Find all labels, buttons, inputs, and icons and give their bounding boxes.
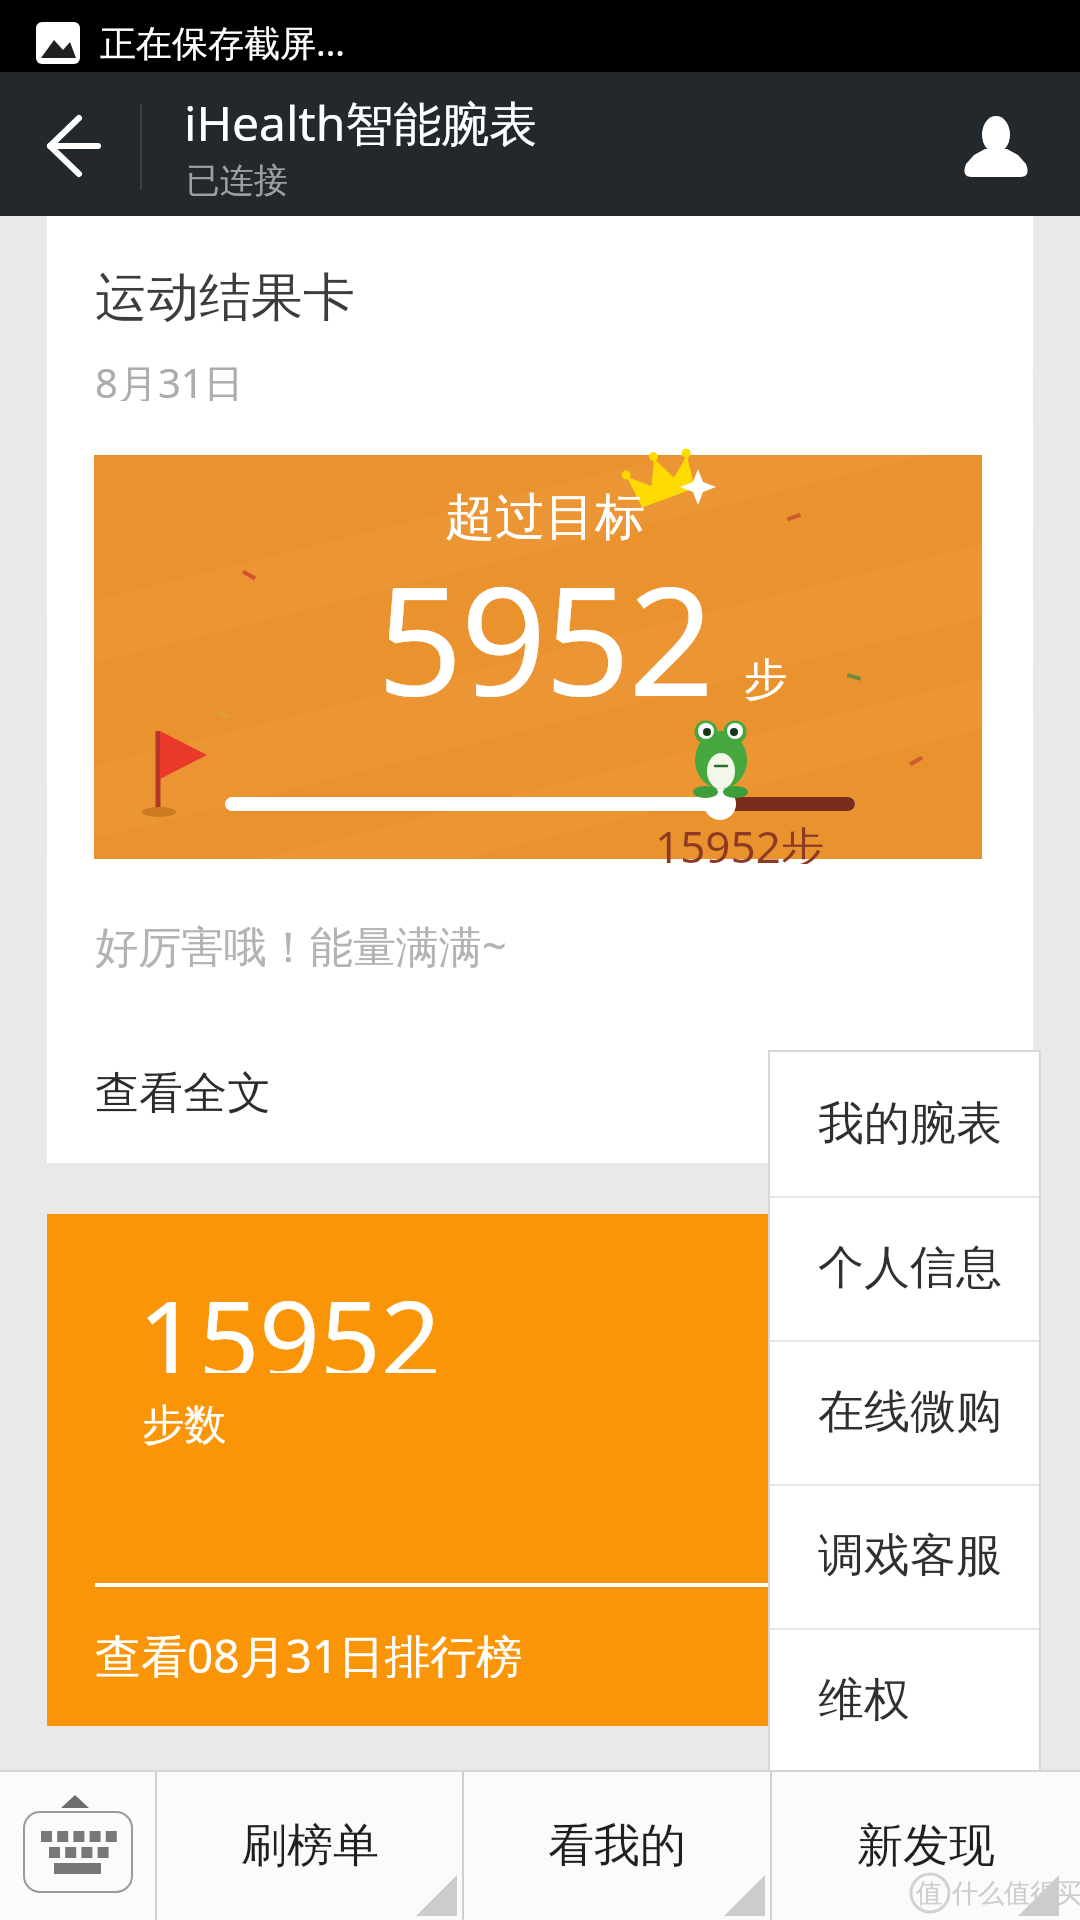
staticText: 步 [744,652,788,706]
button[interactable]: 维权 [770,1628,1039,1772]
staticText: 什么值得买 [952,1877,1080,1910]
button[interactable]: 调戏客服 [770,1484,1039,1628]
button[interactable]: 我的腕表 [770,1052,1039,1196]
staticText: 步数 [142,1399,226,1449]
button[interactable]: 新发现 [772,1772,1080,1920]
staticText: 值 [916,1877,942,1910]
staticText: 看我的 [548,1817,686,1875]
staticText: 新发现 [857,1817,995,1875]
staticText: 我的腕表 [818,1095,1002,1153]
staticText: 查看08月31日排行榜 [95,1624,523,1678]
staticText: 15952步 [655,816,825,864]
staticText: 调戏客服 [818,1527,1002,1585]
button[interactable]: 个人信息 [770,1196,1039,1340]
staticText: 运动结果卡 [95,265,355,325]
staticText: iHealth智能腕表 [184,90,538,148]
staticText: 已连接 [186,159,288,202]
button[interactable] [94,455,982,859]
staticText: 15952 [138,1265,442,1373]
staticText: 5952 [377,536,713,726]
staticText: 个人信息 [818,1239,1002,1297]
button[interactable]: 刷榜单 [157,1772,462,1920]
button[interactable] [0,72,1080,216]
staticText: 正在保存截屏... [100,18,345,66]
button[interactable] [0,1772,155,1920]
staticText: 好厉害哦！能量满满~ [95,916,507,968]
staticText: 刷榜单 [241,1817,379,1875]
staticText: 8月31日 [95,355,244,401]
staticText: 维权 [818,1671,910,1729]
button[interactable] [47,1214,1033,1726]
button[interactable]: 查看全文 [95,1066,295,1120]
button[interactable]: 看我的 [464,1772,770,1920]
staticText: 查看全文 [95,1066,271,1120]
staticText: 在线微购 [818,1383,1002,1441]
button[interactable]: 在线微购 [770,1340,1039,1484]
staticText: 超过目标 [445,486,645,546]
